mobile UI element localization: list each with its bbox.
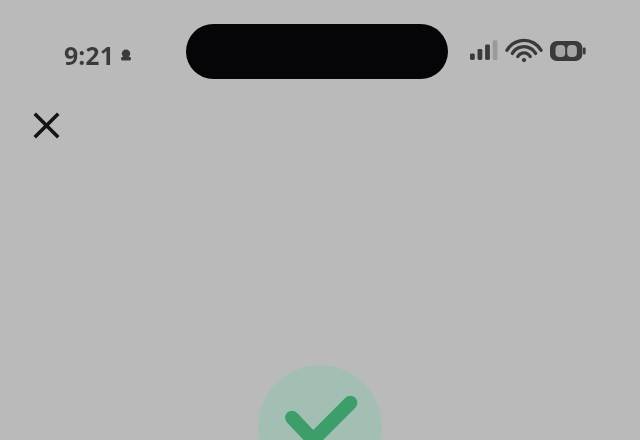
staticText: 9:21 (64, 38, 114, 72)
button[interactable]: Close (22, 101, 70, 149)
